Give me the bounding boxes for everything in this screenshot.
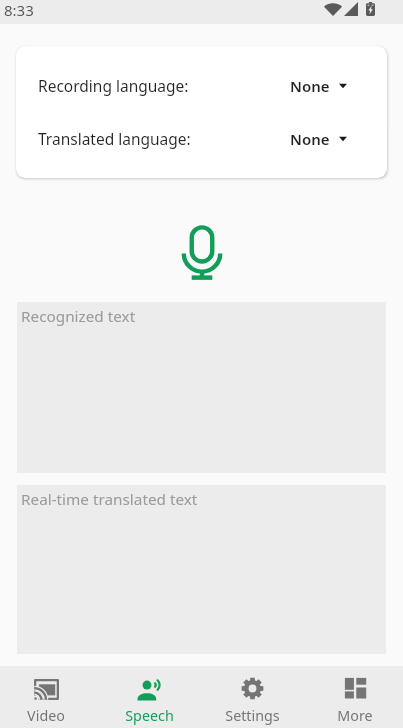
- staticText: Speech: [125, 706, 174, 725]
- button[interactable]: Video: [15, 666, 77, 728]
- staticText: Video: [27, 706, 65, 725]
- staticText: Translated language:: [38, 128, 191, 149]
- button[interactable]: Recording language:: [16, 59, 387, 112]
- staticText: 8:33: [4, 0, 34, 20]
- staticText: None: [290, 76, 330, 96]
- staticText: Recording language:: [38, 75, 189, 96]
- button[interactable]: Translated language:: [16, 112, 387, 165]
- staticText: None: [290, 129, 330, 149]
- button[interactable]: Recognized text: [17, 302, 386, 473]
- staticText: Recognized text: [21, 306, 136, 327]
- button[interactable]: Speech: [118, 666, 180, 728]
- staticText: More: [337, 706, 373, 725]
- button[interactable]: Settings: [221, 666, 283, 728]
- button[interactable]: Real-time translated text: [17, 485, 386, 654]
- button[interactable]: More: [324, 666, 386, 728]
- staticText: Settings: [225, 706, 280, 725]
- button[interactable]: Record: [173, 223, 231, 281]
- staticText: Real-time translated text: [21, 489, 198, 510]
